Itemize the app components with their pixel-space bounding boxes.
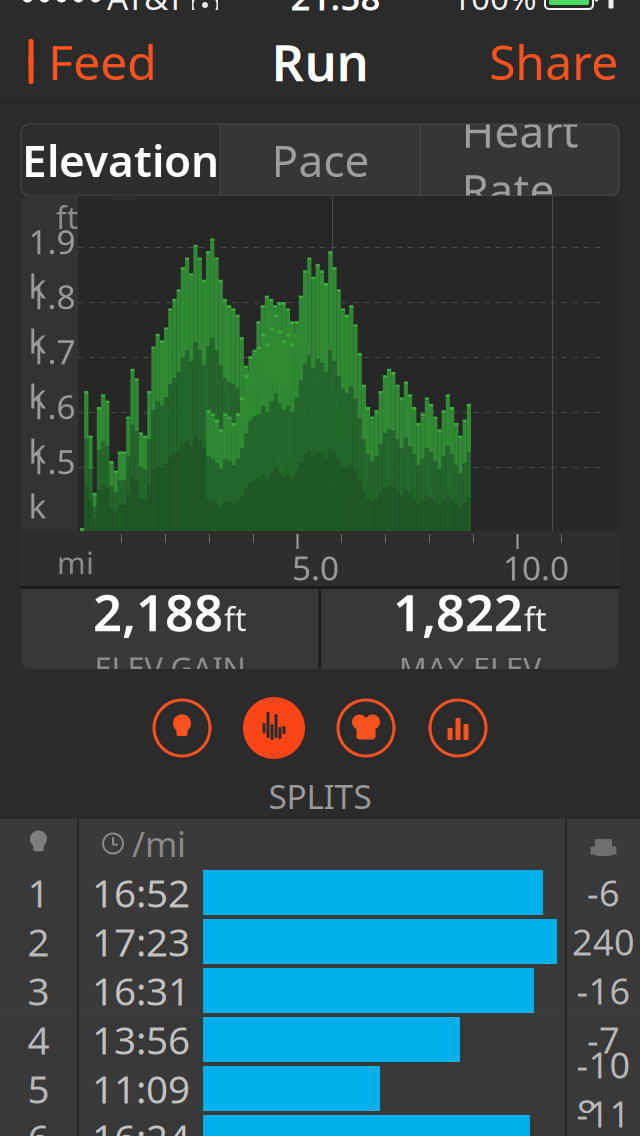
staticText: 16:24 xyxy=(92,1112,190,1136)
staticText: Heart Rate xyxy=(461,102,578,218)
staticText: /mi xyxy=(132,820,186,866)
staticText: -108 xyxy=(576,1041,630,1136)
staticText: ft xyxy=(224,598,247,640)
staticText: -6 xyxy=(587,869,620,916)
button[interactable]: Share xyxy=(467,21,640,101)
staticText: -115 xyxy=(576,1090,630,1136)
button[interactable]: Heart Rate xyxy=(335,697,397,759)
staticText: AT&T xyxy=(107,0,185,19)
staticText: 1.5k xyxy=(28,439,75,528)
staticText: ft xyxy=(56,197,78,237)
staticText: 6 xyxy=(27,1112,49,1136)
button[interactable]: 5 xyxy=(0,1064,640,1113)
button[interactable]: Feed xyxy=(0,21,177,101)
staticText: 1 xyxy=(27,867,49,918)
staticText: Run xyxy=(271,28,368,95)
staticText: 2,188 xyxy=(93,578,223,645)
button[interactable]: Elevation xyxy=(21,124,220,196)
staticText: 16:31 xyxy=(92,965,190,1016)
staticText: Share xyxy=(489,30,618,93)
button[interactable]: 4 xyxy=(0,1015,640,1064)
button[interactable]: Elevation xyxy=(243,697,305,759)
staticText: -7 xyxy=(587,1016,620,1063)
staticText: 5.0 xyxy=(292,545,339,590)
button[interactable]: Heart Rate xyxy=(421,124,619,196)
staticText: 3 xyxy=(27,965,49,1016)
staticText: 21:58 xyxy=(290,0,380,20)
button[interactable]: 3 xyxy=(0,966,640,1015)
button[interactable]: 6 xyxy=(0,1113,640,1136)
staticText: 1,822 xyxy=(393,578,523,645)
staticText: 4 xyxy=(27,1014,49,1065)
staticText: 17:23 xyxy=(92,916,190,967)
staticText: 100% xyxy=(452,0,537,19)
button[interactable]: Map xyxy=(151,697,213,759)
button[interactable]: 1 xyxy=(0,868,640,917)
staticText: mi xyxy=(57,542,94,583)
staticText: -16 xyxy=(576,967,630,1014)
button[interactable]: 2 xyxy=(0,917,640,966)
staticText: ELEV GAIN xyxy=(94,647,245,688)
button[interactable]: 2,188 xyxy=(21,589,318,669)
staticText: 1.7k xyxy=(28,329,75,418)
staticText: 11:09 xyxy=(92,1063,190,1114)
button[interactable]: Splits xyxy=(427,697,489,759)
staticText: Feed xyxy=(48,30,157,93)
staticText: 13:56 xyxy=(92,1014,190,1065)
staticText: Elevation xyxy=(22,131,219,189)
staticText: 10.0 xyxy=(503,545,569,590)
staticText: MAX ELEV xyxy=(399,647,541,688)
staticText: 1.6k xyxy=(28,384,75,473)
staticText: ft xyxy=(524,598,547,640)
staticText: 16:52 xyxy=(92,867,190,918)
staticText: 1.9k xyxy=(28,219,75,308)
button[interactable]: Pace xyxy=(221,124,420,196)
staticText: 2 xyxy=(27,916,49,967)
staticText: SPLITS xyxy=(268,774,371,818)
staticText: 240 xyxy=(572,918,635,965)
button[interactable]: 1,822 xyxy=(321,589,618,669)
staticText: 1.8k xyxy=(28,274,75,363)
staticText: 5 xyxy=(27,1063,49,1114)
staticText: Pace xyxy=(271,131,369,189)
